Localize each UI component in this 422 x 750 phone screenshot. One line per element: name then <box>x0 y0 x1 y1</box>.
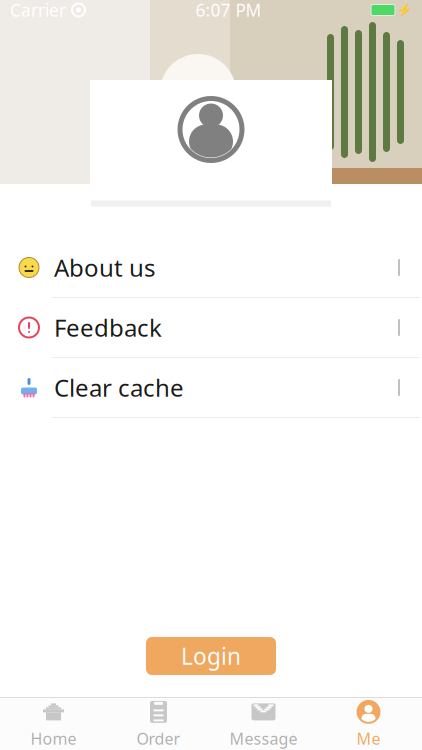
staticText: Carrier <box>10 0 66 21</box>
button[interactable]: About us <box>0 238 422 298</box>
button[interactable]: Feedback <box>0 298 422 358</box>
button[interactable]: Login <box>146 637 276 675</box>
button[interactable]: Message <box>211 698 316 750</box>
button[interactable]: Me <box>316 698 421 750</box>
staticText: 6:07 PM <box>195 0 261 21</box>
staticText: Feedback <box>54 312 162 343</box>
button[interactable]: Home <box>1 698 106 750</box>
staticText: About us <box>54 252 155 283</box>
staticText: Message <box>229 728 297 749</box>
staticText: Login <box>181 641 241 671</box>
staticText: Me <box>356 728 380 749</box>
staticText: Home <box>30 728 76 749</box>
button[interactable]: Order <box>106 698 211 750</box>
button[interactable]: Clear cache <box>0 358 422 418</box>
staticText: ⚡ <box>397 3 412 17</box>
staticText: Order <box>136 728 180 749</box>
staticText: Clear cache <box>54 372 184 403</box>
